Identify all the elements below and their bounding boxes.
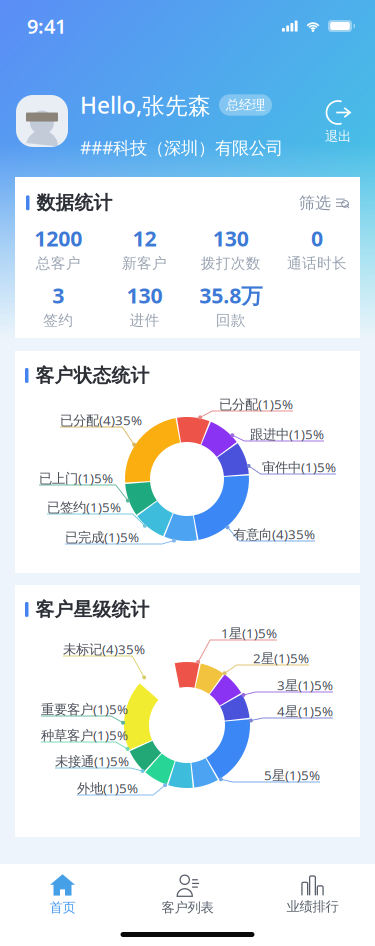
staticText: 总客户 <box>36 254 81 272</box>
staticText: 2星(1)5% <box>253 649 309 667</box>
staticText: 通话时长 <box>287 254 347 272</box>
staticText: 业绩排行 <box>286 898 338 915</box>
staticText: 新客户 <box>122 254 167 272</box>
staticText: 1星(1)5% <box>221 624 277 642</box>
staticText: 已完成(1)5% <box>65 528 139 546</box>
staticText: 35.8万 <box>199 281 262 309</box>
staticText: 签约 <box>43 311 73 329</box>
staticText: 重要客户(1)5% <box>41 700 128 718</box>
staticText: 筛选 <box>299 193 331 213</box>
staticText: 4星(1)5% <box>277 702 333 720</box>
staticText: 首页 <box>49 899 75 916</box>
staticText: 5星(1)5% <box>264 766 320 784</box>
staticText: 已签约(1)5% <box>47 498 121 516</box>
staticText: ###科技（深圳）有限公司 <box>80 136 283 159</box>
staticText: 退出 <box>325 128 351 144</box>
staticText: 130 <box>213 224 249 252</box>
staticText: 12 <box>132 224 156 252</box>
staticText: 未接通(1)5% <box>55 752 129 770</box>
staticText: 外地(1)5% <box>77 779 138 797</box>
staticText: Hello,张先森 <box>80 90 211 120</box>
staticText: 已分配(1)5% <box>219 395 293 413</box>
staticText: 0 <box>311 224 323 252</box>
staticText: 9:41 <box>27 13 66 39</box>
staticText: 3星(1)5% <box>277 676 333 694</box>
staticText: 客户列表 <box>161 899 213 916</box>
staticText: 已上门(1)5% <box>39 469 113 487</box>
staticText: 回款 <box>216 311 246 329</box>
staticText: 130 <box>126 281 162 309</box>
staticText: 总经理 <box>226 97 265 113</box>
staticText: 已分配(4)35% <box>60 411 142 429</box>
staticText: 客户状态统计 <box>35 364 149 387</box>
staticText: 种草客户(1)5% <box>41 726 128 744</box>
button[interactable]: 筛选 <box>299 189 349 217</box>
staticText: 1200 <box>34 224 82 252</box>
staticText: 3 <box>52 281 64 309</box>
button[interactable]: 退出 <box>315 100 361 144</box>
button[interactable]: 业绩排行 <box>250 874 375 915</box>
staticText: 有意向(4)35% <box>233 525 315 543</box>
button[interactable]: 客户列表 <box>125 873 250 916</box>
staticText: 数据统计 <box>36 191 112 214</box>
button[interactable]: 首页 <box>0 873 125 916</box>
staticText: 拨打次数 <box>201 254 261 272</box>
staticText: 跟进中(1)5% <box>250 425 324 443</box>
staticText: 审件中(1)5% <box>262 458 336 476</box>
staticText: 进件 <box>129 311 159 329</box>
staticText: 客户星级统计 <box>35 598 149 621</box>
staticText: 未标记(4)35% <box>63 640 145 658</box>
